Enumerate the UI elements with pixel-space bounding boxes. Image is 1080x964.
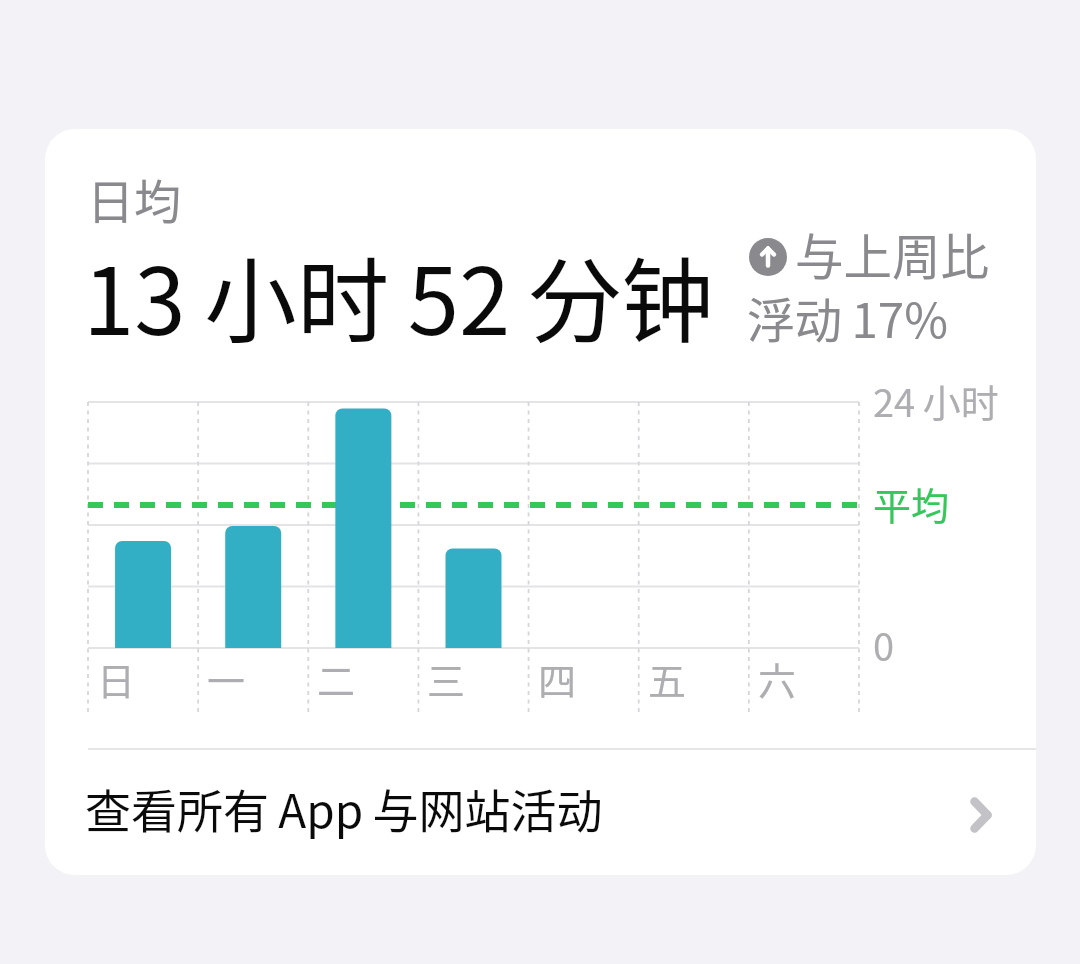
staticText: 日 [97, 651, 136, 706]
staticText: 六 [758, 651, 797, 706]
staticText: 查看所有 App 与网站活动 [85, 775, 603, 842]
staticText: 浮动 17% [747, 283, 948, 352]
staticText: 二 [317, 651, 356, 706]
staticText: 13 小时 52 分钟 [83, 228, 714, 362]
staticText: 平均 [873, 476, 950, 531]
staticText: 24 小时 [873, 373, 999, 428]
staticText: 五 [648, 651, 687, 706]
staticText: 0 [873, 617, 895, 672]
staticText: 四 [538, 651, 577, 706]
staticText: 一 [207, 651, 246, 706]
staticText: 与上周比 [795, 219, 990, 289]
staticText: 日均 [87, 164, 181, 232]
button[interactable]: 查看所有 App 与网站活动 [45, 750, 1036, 875]
staticText: 三 [427, 651, 466, 706]
